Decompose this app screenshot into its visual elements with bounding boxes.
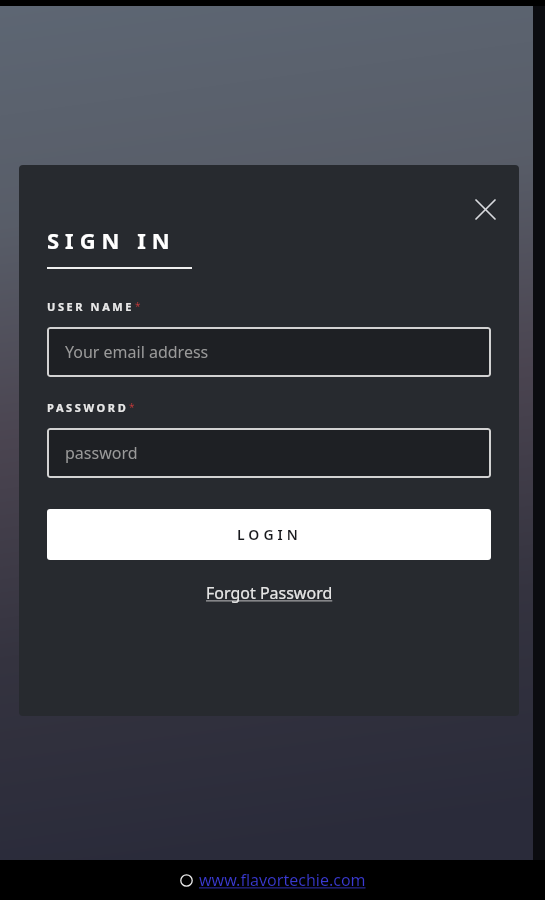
button[interactable]: Forgot Password: [200, 578, 339, 608]
staticText: *: [129, 400, 135, 414]
staticText: password: [65, 442, 138, 464]
button[interactable]: Your email address: [47, 327, 491, 377]
button[interactable]: Close: [463, 187, 507, 231]
staticText: SIGN IN: [47, 225, 176, 255]
button[interactable]: LOGIN: [47, 509, 491, 560]
staticText: Forgot Password: [206, 582, 333, 604]
staticText: USER NAME: [47, 299, 135, 314]
staticText: *: [135, 299, 141, 313]
button[interactable]: password: [47, 428, 491, 478]
staticText: Your email address: [65, 341, 209, 363]
staticText: www.flavortechie.com: [199, 869, 366, 891]
staticText: LOGIN: [237, 525, 302, 544]
staticText: PASSWORD: [47, 400, 129, 415]
button[interactable]: www.flavortechie.com: [199, 869, 366, 891]
